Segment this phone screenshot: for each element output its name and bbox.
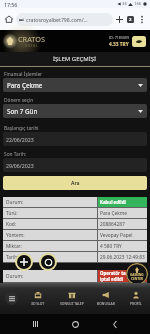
button[interactable]: Home <box>68 317 82 331</box>
button[interactable]: New tab <box>114 14 125 25</box>
staticText: Operatör tarafından iptal edildi <box>100 270 145 282</box>
button[interactable]: Gaming Center <box>126 263 148 285</box>
button[interactable]: BONUSLAR <box>90 283 122 314</box>
staticText: R O Y A L <box>25 44 38 48</box>
button[interactable]: Operatör tarafından iptal edildi <box>98 270 147 283</box>
staticText: Finansal İşlemler <box>4 71 43 78</box>
button[interactable]: Home <box>3 13 15 25</box>
staticText: SONSUZ TALEP <box>60 301 84 306</box>
staticText: 2 <box>129 17 132 23</box>
staticText: GAMING <box>130 273 144 277</box>
staticText: Kod: <box>6 221 17 228</box>
button[interactable]: Para Çekme <box>98 208 147 219</box>
staticText: 3D SLOT <box>31 301 45 306</box>
button[interactable]: Kabul edildi <box>98 197 147 208</box>
button[interactable]: Miktar: <box>3 241 97 252</box>
staticText: 166 <box>134 1 142 7</box>
button[interactable]: Tabs <box>125 14 136 25</box>
staticText: 17:56 <box>4 1 18 8</box>
button[interactable]: WhatsApp <box>41 255 55 269</box>
staticText: 4 580 TRY <box>100 243 122 250</box>
button[interactable]: 3D SLOT <box>23 283 53 314</box>
button[interactable]: PROFİL <box>122 283 150 314</box>
staticText: Kabul edildi <box>100 199 126 205</box>
button[interactable]: Türü: <box>3 208 97 219</box>
button[interactable]: Account <box>132 36 146 47</box>
button[interactable]: Ara <box>3 176 147 190</box>
staticText: 29.06.2023 12:49:83 <box>100 254 145 261</box>
button[interactable]: Durum: <box>3 270 97 283</box>
staticText: 29/06/2023 <box>6 162 34 169</box>
button[interactable]: cratosroyalbet798.com/… <box>16 13 113 26</box>
button[interactable]: 22/06/2023 <box>3 132 147 146</box>
staticText: İŞLEM GEÇMİŞİ <box>53 55 97 63</box>
staticText: Ara <box>71 180 80 187</box>
staticText: CENTER <box>131 277 144 281</box>
button[interactable]: Vevopay Papel <box>98 230 147 241</box>
staticText: Durum: <box>6 273 24 280</box>
staticText: Son 7 Gün <box>7 107 38 116</box>
button[interactable]: Kod: <box>3 219 97 230</box>
button[interactable]: Para Çekme <box>3 78 147 92</box>
staticText: 22/06/2023 <box>6 136 34 143</box>
button[interactable]: 4 580 TRY <box>98 241 147 252</box>
staticText: cratosroyalbet798.com/… <box>26 16 88 23</box>
button[interactable]: SONSUZ TALEP <box>53 283 90 314</box>
button[interactable]: Durum: <box>3 197 97 208</box>
staticText: 208864287 <box>100 221 125 228</box>
staticText: Dönem seçin <box>4 97 34 104</box>
button[interactable]: Add <box>17 255 31 269</box>
staticText: BONUSLAR <box>97 301 115 306</box>
staticText: Son Tarih: <box>4 151 27 158</box>
staticText: PROFİL <box>130 301 142 306</box>
button[interactable]: More options <box>136 14 147 25</box>
staticText: Başlangıç tarihi <box>4 125 39 132</box>
button[interactable]: Yöntem: <box>3 230 97 241</box>
button[interactable]: Tarih: <box>3 252 97 263</box>
button[interactable]: Recent apps <box>28 317 42 331</box>
staticText: Para Çekme <box>100 210 127 217</box>
staticText: Türü: <box>6 210 18 217</box>
staticText: Durum: <box>6 199 24 206</box>
staticText: 36 <box>122 1 127 7</box>
button[interactable]: 29.06.2023 12:49:83 <box>98 252 147 263</box>
staticText: Tarih: <box>6 254 19 261</box>
staticText: Para Çekme <box>7 81 43 90</box>
staticText: Vevopay Papel <box>100 232 133 239</box>
staticText: ID: 7185009 <box>109 35 130 40</box>
button[interactable]: 208864287 <box>98 219 147 230</box>
button[interactable]: Back <box>108 317 122 331</box>
button[interactable]: Son 7 Gün <box>3 104 147 118</box>
staticText: Miktar: <box>6 243 22 250</box>
staticText: Yöntem: <box>6 232 25 239</box>
staticText: 4.33 TRY <box>109 41 129 48</box>
button[interactable]: CRATOS <box>3 34 45 48</box>
staticText: CRATOS <box>18 34 45 44</box>
button[interactable]: 29/06/2023 <box>3 158 147 172</box>
button[interactable]: Menu <box>0 283 23 314</box>
